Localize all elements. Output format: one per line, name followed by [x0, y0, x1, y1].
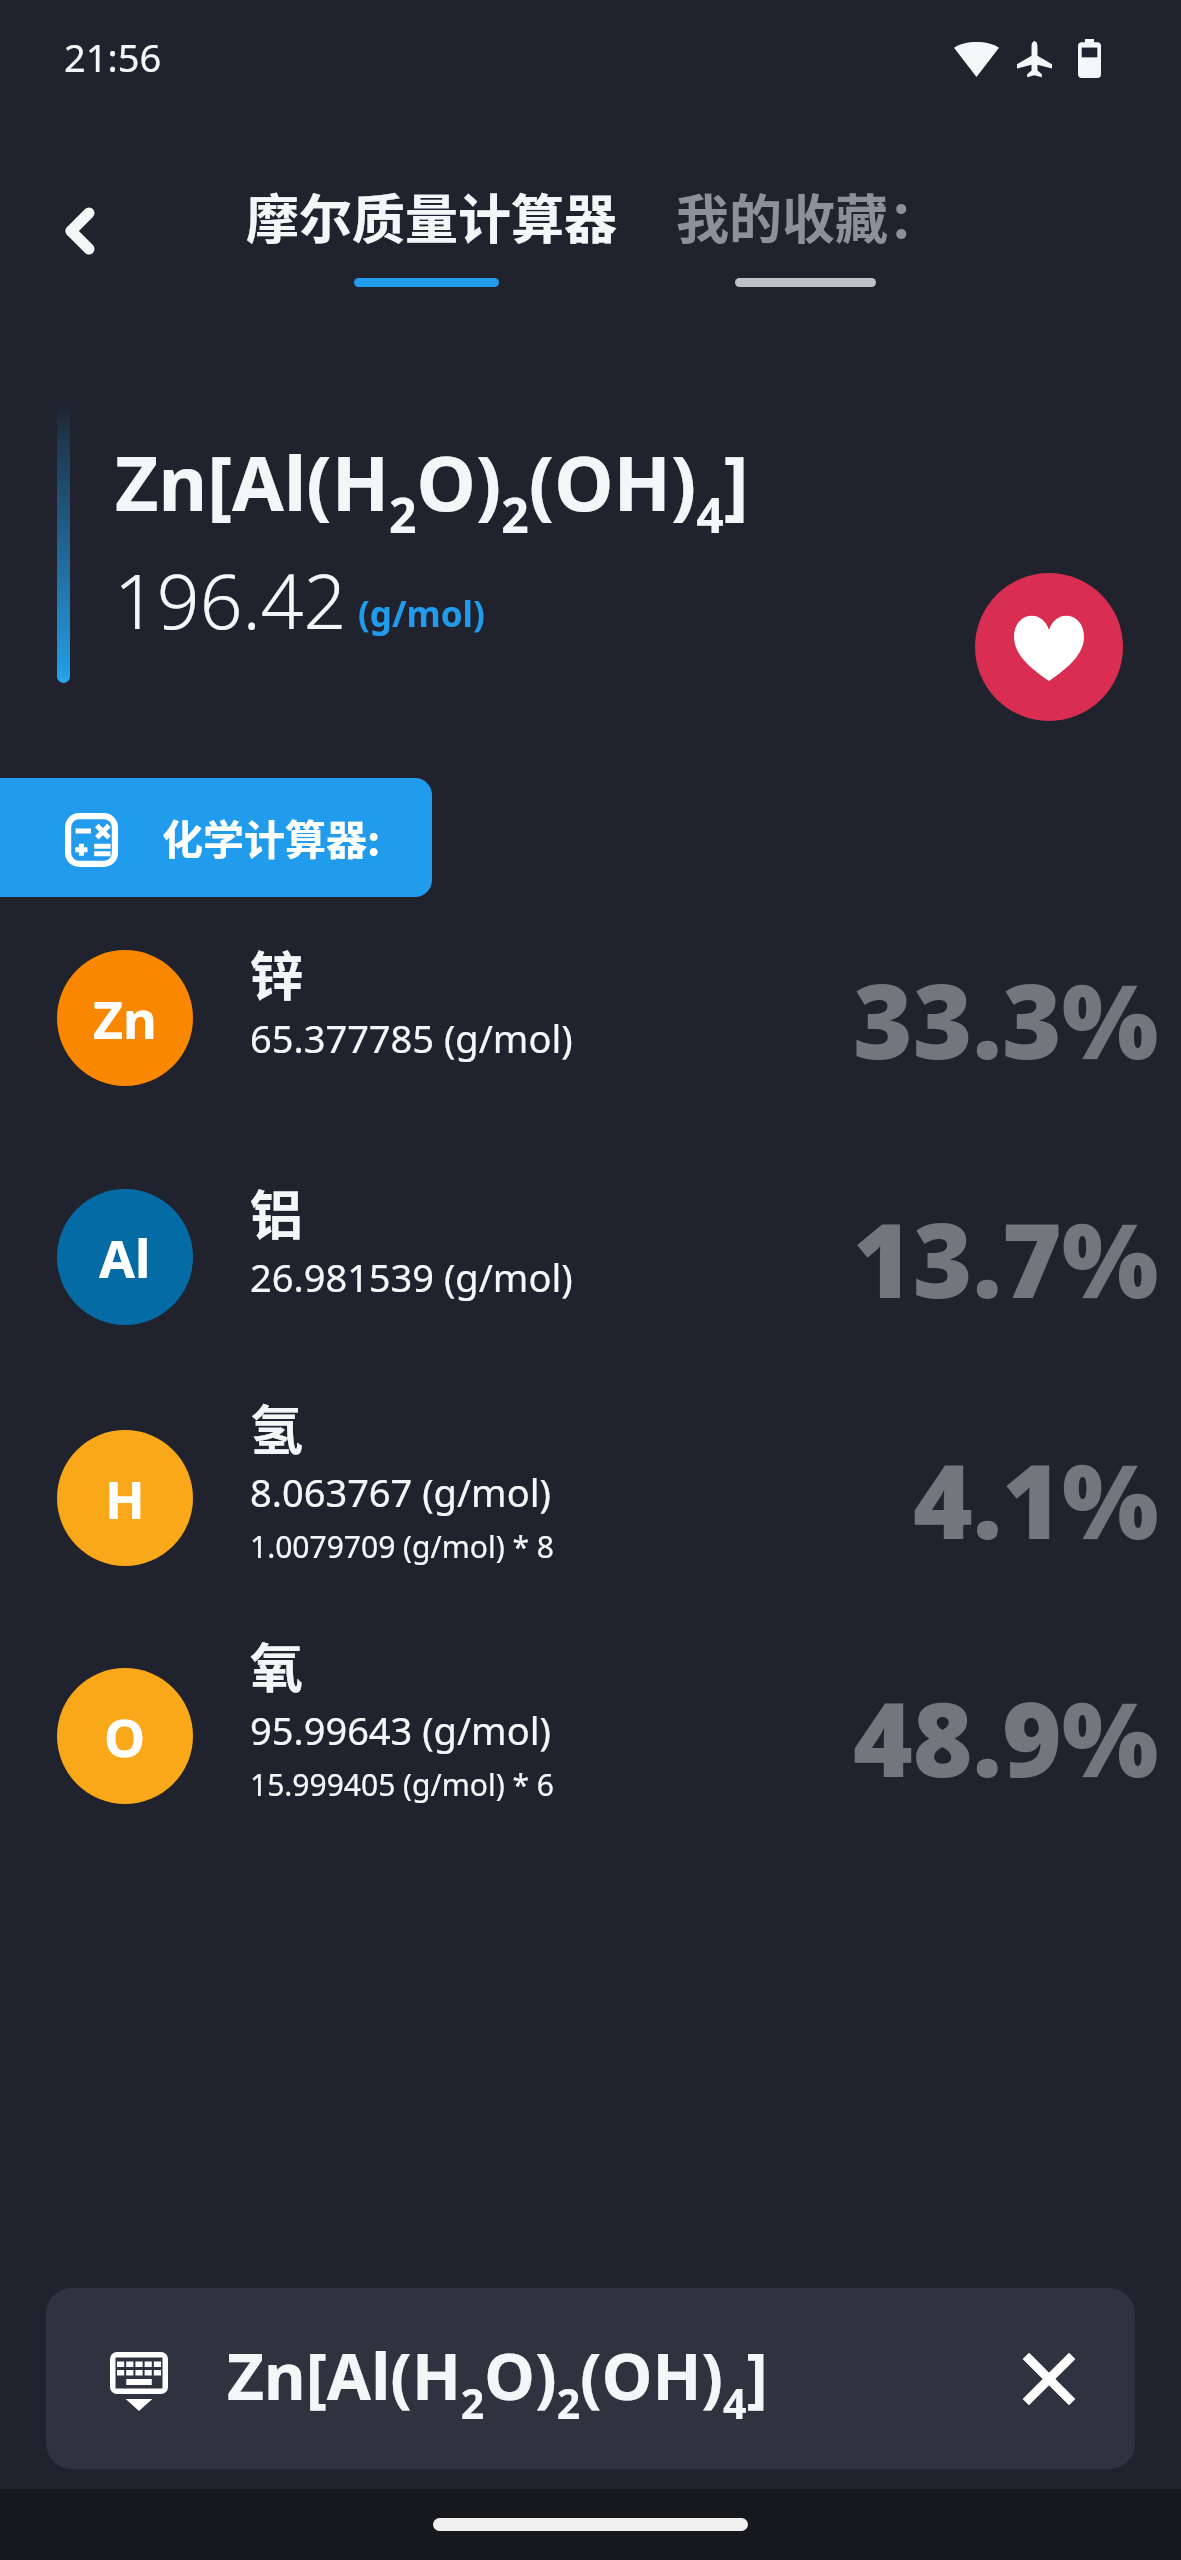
- staticText: 48.9%: [853, 1668, 1159, 1807]
- staticText: Al: [99, 1222, 151, 1293]
- staticText: 4.1%: [913, 1430, 1159, 1569]
- button[interactable]: Favorite: [975, 573, 1123, 721]
- staticText: O: [104, 1701, 146, 1772]
- button[interactable]: O: [0, 1616, 1181, 1856]
- staticText: 26.981539 (g/mol): [250, 1251, 573, 1303]
- staticText: 氢: [250, 1389, 303, 1466]
- button[interactable]: Al: [0, 1137, 1181, 1377]
- staticText: 196.42: [114, 549, 347, 651]
- button[interactable]: 我的收藏：: [656, 158, 926, 308]
- button[interactable]: Back: [25, 176, 135, 286]
- staticText: 化学计算器:: [162, 807, 381, 866]
- staticText: 铝: [250, 1174, 303, 1251]
- staticText: 1.0079709 (g/mol) * 8: [250, 1526, 554, 1567]
- staticText: 33.3%: [853, 950, 1159, 1089]
- button[interactable]: 摩尔质量计算器: [226, 158, 630, 308]
- staticText: Zn: [93, 983, 157, 1054]
- staticText: 65.377785 (g/mol): [250, 1012, 573, 1064]
- staticText: 13.7%: [853, 1189, 1159, 1328]
- button[interactable]: Zn: [0, 898, 1181, 1138]
- staticText: 21:56: [64, 31, 162, 83]
- staticText: (g/mol): [358, 590, 485, 638]
- staticText: Zn[Al(H2O)2(OH)4]: [115, 431, 749, 547]
- staticText: 锌: [250, 935, 303, 1012]
- button[interactable]: 化学计算器:: [0, 778, 432, 897]
- staticText: 95.99643 (g/mol): [250, 1704, 551, 1756]
- staticText: H: [105, 1463, 145, 1534]
- staticText: 摩尔质量计算器: [246, 178, 617, 255]
- staticText: Zn[Al(H2O)2(OH)4]: [227, 2332, 768, 2431]
- staticText: 我的收藏：: [676, 178, 941, 255]
- staticText: 氧: [250, 1627, 303, 1704]
- button[interactable]: Clear: [1023, 2353, 1075, 2405]
- button[interactable]: Hide keyboard: [96, 2338, 182, 2424]
- button[interactable]: H: [0, 1378, 1181, 1618]
- button[interactable]: Hide keyboard: [46, 2288, 1135, 2469]
- staticText: 15.999405 (g/mol) * 6: [250, 1764, 554, 1805]
- staticText: 8.063767 (g/mol): [250, 1466, 551, 1518]
